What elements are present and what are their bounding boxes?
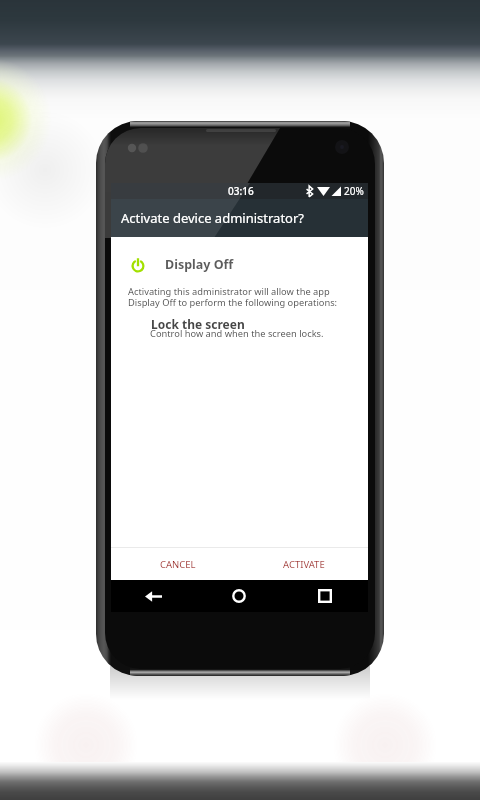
button[interactable]: Back [111,580,196,612]
button[interactable]: Recents [282,580,368,612]
staticText: 20% [344,184,364,198]
button[interactable]: Home [196,580,282,612]
staticText: Display Off [165,256,234,273]
staticText: Lock the screen [151,316,245,332]
staticText: Activate device administrator? [121,209,304,227]
staticText: ACTIVATE [283,558,325,571]
staticText: 03:16 [228,184,254,198]
button[interactable]: ACTIVATE [266,552,342,576]
staticText: Control how and when the screen locks. [150,327,324,340]
staticText: CANCEL [160,558,196,571]
staticText: Activating this administrator will allow… [128,285,338,309]
button[interactable]: CANCEL [142,552,214,576]
